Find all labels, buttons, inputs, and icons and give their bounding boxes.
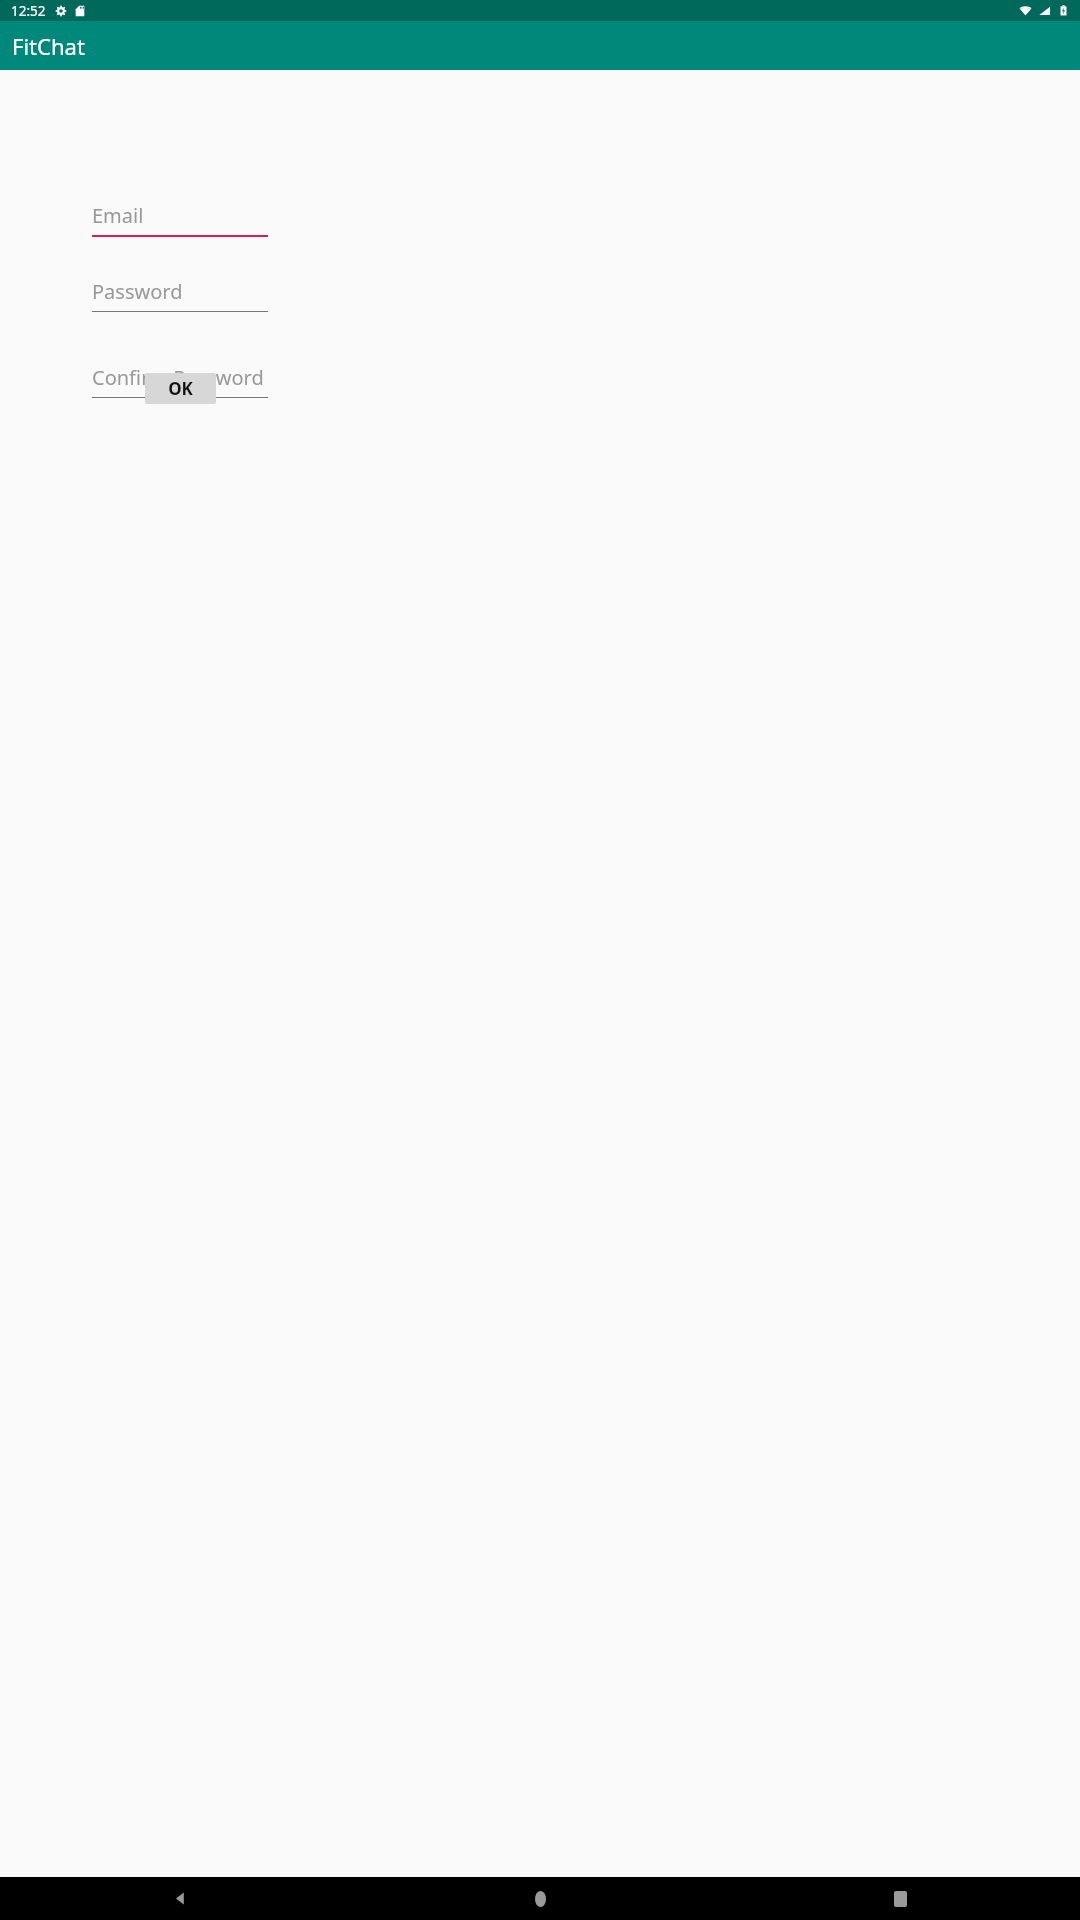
staticText: Email (92, 202, 144, 228)
button[interactable]: Email (92, 202, 268, 237)
staticText: OK (168, 377, 193, 400)
staticText: Password (92, 278, 183, 304)
button[interactable]: Back (0, 1877, 360, 1920)
staticText: Confirm Password (92, 364, 264, 390)
staticText: FitChat (12, 31, 85, 61)
button[interactable]: Confirm Password (92, 364, 268, 398)
staticText: 12:52 (11, 2, 46, 20)
button[interactable]: Password (92, 278, 268, 312)
button[interactable]: Home (360, 1877, 720, 1920)
button[interactable]: OK (145, 373, 216, 404)
button[interactable]: Recent apps (720, 1877, 1080, 1920)
